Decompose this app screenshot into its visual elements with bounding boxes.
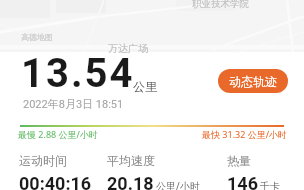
staticText: 20.18 [107, 173, 154, 190]
staticText: 千卡 [260, 180, 280, 190]
staticText: 热量 [227, 153, 251, 168]
staticText: 2022年8月3日 18:51 [23, 97, 124, 111]
staticText: 146 [227, 173, 258, 190]
staticText: 最快 31.32 公里/小时 [202, 128, 288, 140]
staticText: 00:40:16 [19, 173, 92, 190]
staticText: 最慢 2.88 公里/小时 [18, 128, 98, 140]
staticText: 职业技术学院 [192, 0, 249, 10]
staticText: 动态轨迹 [229, 74, 277, 89]
staticText: 平均速度 [107, 153, 155, 168]
staticText: 公里 [133, 79, 157, 94]
staticText: 运动时间 [19, 153, 67, 168]
staticText: 万达广场 [108, 42, 148, 55]
staticText: 13.54 [21, 50, 135, 97]
staticText: 公里/小时 [156, 179, 200, 190]
button[interactable]: 动态轨迹 [218, 69, 288, 93]
staticText: 高德地图 [21, 32, 53, 42]
